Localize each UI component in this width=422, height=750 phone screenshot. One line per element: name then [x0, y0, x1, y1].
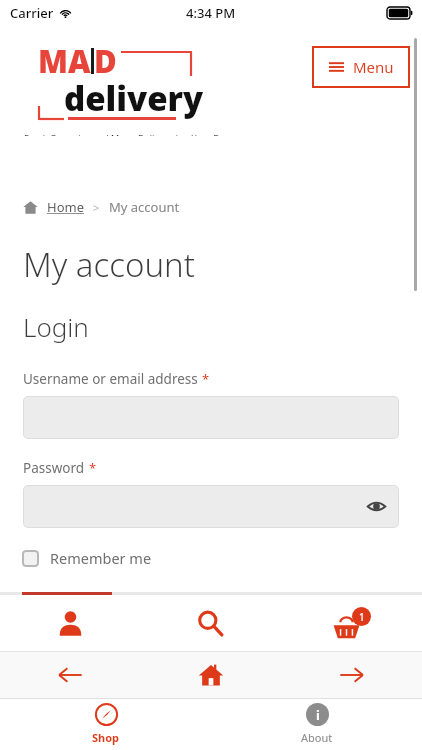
staticText: D [94, 40, 117, 82]
staticText: 4:34 PM [186, 4, 236, 22]
button[interactable]: Show password [23, 485, 399, 528]
button[interactable]: Back [0, 651, 140, 698]
staticText: Login [23, 309, 89, 344]
staticText: Carrier [10, 4, 54, 22]
button[interactable]: Forward [281, 651, 422, 698]
staticText: About [301, 730, 333, 745]
button[interactable]: i [211, 698, 422, 750]
staticText: > [93, 200, 100, 215]
button[interactable]: Home [140, 651, 281, 698]
button[interactable]: Cart, 1 item [281, 595, 422, 651]
staticText: My account [109, 198, 180, 216]
button[interactable]: Search [140, 595, 281, 651]
button[interactable]: Shop [0, 698, 211, 750]
button[interactable]: Home [23, 200, 38, 215]
button[interactable]: Home [47, 198, 84, 216]
staticText: Password [23, 459, 85, 477]
staticText: My account [23, 242, 195, 287]
staticText: * [202, 370, 210, 388]
staticText: Shop [92, 730, 120, 745]
staticText: i [316, 706, 320, 724]
staticText: Remember me [50, 548, 152, 568]
button[interactable]: Remember me [22, 548, 152, 568]
button[interactable]: Show password [367, 497, 386, 516]
button[interactable]: Menu [312, 46, 410, 88]
staticText: delivery [64, 76, 204, 121]
button[interactable] [23, 396, 399, 439]
staticText: Menu [353, 57, 394, 77]
staticText: 1 [359, 610, 365, 624]
button[interactable]: Account [0, 595, 140, 651]
staticText: Username or email address [23, 370, 198, 388]
staticText: MA [38, 40, 91, 82]
staticText: Food, Groceries and More, Delivered to Y… [24, 132, 257, 136]
staticText: * [89, 459, 97, 477]
